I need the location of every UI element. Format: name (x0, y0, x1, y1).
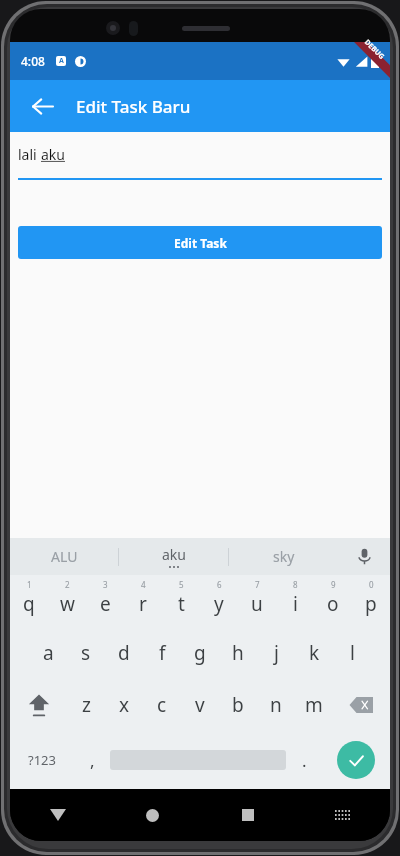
staticText: e (100, 591, 111, 617)
button[interactable]: f (143, 627, 181, 679)
staticText: l (350, 640, 355, 666)
button[interactable]: h (219, 627, 257, 679)
staticText: k (309, 640, 320, 666)
button[interactable]: k (295, 627, 333, 679)
staticText: p (365, 591, 377, 617)
staticText: a (43, 640, 54, 666)
button[interactable]: j (257, 627, 295, 679)
button[interactable]: x (105, 679, 143, 731)
staticText: q (23, 591, 35, 617)
staticText: y (214, 591, 224, 617)
staticText: lali (18, 145, 41, 164)
staticText: x (119, 692, 130, 718)
button[interactable]: m (295, 679, 333, 731)
staticText: i (293, 591, 298, 617)
button[interactable]: Backspace (333, 679, 390, 731)
button[interactable]: a (29, 627, 67, 679)
staticText: 6 (217, 579, 222, 590)
staticText: 4 (141, 579, 146, 590)
staticText: ?123 (28, 751, 56, 769)
button[interactable]: Switch keyboard (295, 789, 390, 841)
button[interactable]: n (257, 679, 295, 731)
staticText: . (302, 749, 307, 772)
button[interactable]: g (181, 627, 219, 679)
staticText: o (327, 591, 339, 617)
staticText: 5 (179, 579, 184, 590)
staticText: aku (41, 145, 65, 164)
button[interactable]: 1 (10, 575, 48, 627)
button[interactable]: Recents (200, 789, 295, 841)
staticText: 8 (293, 579, 298, 590)
staticText: 2 (65, 579, 70, 590)
button[interactable]: v (181, 679, 219, 731)
staticText: t (178, 591, 185, 617)
staticText: n (270, 692, 282, 718)
button[interactable]: 6 (200, 575, 238, 627)
staticText: aku (162, 545, 186, 564)
staticText: 7 (255, 579, 260, 590)
staticText: sky (273, 547, 295, 566)
button[interactable]: ?123 (10, 731, 74, 789)
button[interactable]: ALU (10, 538, 118, 575)
staticText: h (232, 640, 244, 666)
button[interactable]: Back (22, 86, 62, 126)
staticText: g (194, 640, 206, 666)
staticText: Edit Task Baru (76, 95, 191, 118)
button[interactable]: c (143, 679, 181, 731)
button[interactable]: 0 (352, 575, 390, 627)
button[interactable]: Back (10, 789, 105, 841)
staticText: f (159, 640, 166, 666)
staticText: m (305, 692, 323, 718)
button[interactable]: z (67, 679, 105, 731)
staticText: u (251, 591, 263, 617)
button[interactable]: l (333, 627, 371, 679)
button[interactable]: s (67, 627, 105, 679)
staticText: 3 (103, 579, 108, 590)
button[interactable]: 5 (162, 575, 200, 627)
staticText: 9 (331, 579, 336, 590)
button[interactable]: Shift (10, 679, 67, 731)
button[interactable]: 9 (314, 575, 352, 627)
staticText: ALU (51, 547, 78, 566)
staticText: j (274, 640, 279, 666)
button[interactable]: Done (337, 741, 375, 779)
staticText: , (90, 749, 95, 772)
staticText: s (81, 640, 91, 666)
button[interactable]: d (105, 627, 143, 679)
staticText: A (59, 56, 64, 66)
button[interactable]: 3 (86, 575, 124, 627)
button[interactable]: 8 (276, 575, 314, 627)
button[interactable]: Home (105, 789, 200, 841)
staticText: Edit Task (174, 235, 227, 251)
button[interactable]: 7 (238, 575, 276, 627)
button[interactable]: aku (119, 538, 228, 575)
staticText: v (195, 692, 205, 718)
button[interactable]: Edit Task (18, 226, 382, 259)
button[interactable]: sky (229, 538, 338, 575)
staticText: z (82, 692, 91, 718)
button[interactable]: 4 (124, 575, 162, 627)
button[interactable]: b (219, 679, 257, 731)
staticText: 0 (369, 579, 374, 590)
button[interactable]: 2 (48, 575, 86, 627)
staticText: w (60, 591, 75, 617)
button[interactable]: , (74, 731, 110, 789)
button[interactable]: . (286, 731, 322, 789)
staticText: b (232, 692, 244, 718)
staticText: 4:08 (21, 53, 45, 69)
staticText: c (157, 692, 167, 718)
staticText: 1 (27, 579, 32, 590)
button[interactable]: Voice input (338, 538, 390, 575)
staticText: r (139, 591, 147, 617)
staticText: d (118, 640, 130, 666)
staticText: DEBUG (362, 38, 387, 62)
